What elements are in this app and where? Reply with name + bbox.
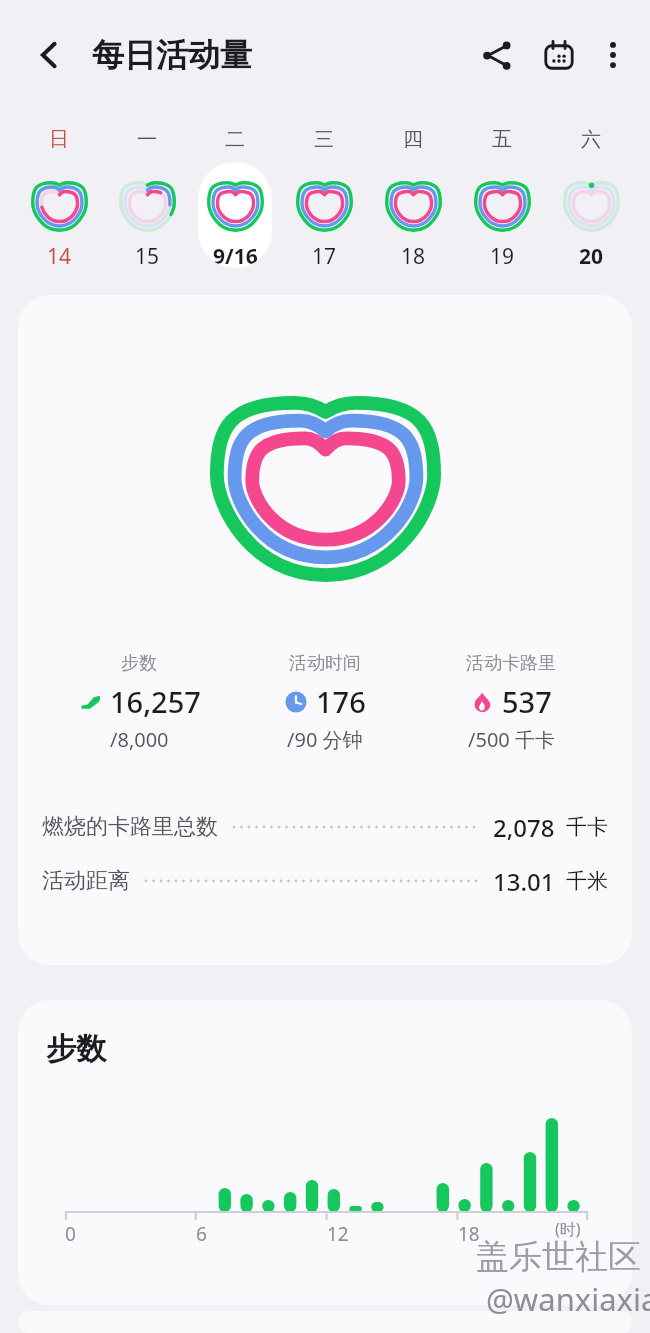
staticText: 15	[135, 242, 160, 268]
button[interactable]: 活动时间	[232, 652, 418, 753]
staticText: 18	[458, 1221, 480, 1247]
button[interactable]: 六	[546, 127, 635, 268]
staticText: 一	[137, 127, 157, 152]
button[interactable]: Share	[470, 28, 524, 82]
staticText: /8,000	[110, 726, 169, 753]
staticText: 活动时间	[289, 652, 361, 675]
button[interactable]: Calendar	[532, 28, 586, 82]
button[interactable]: 燃烧的卡路里总数	[42, 804, 608, 850]
staticText: 17	[312, 242, 337, 268]
staticText: 2,078	[493, 811, 555, 844]
button[interactable]: Back	[26, 32, 72, 78]
staticText: 14	[47, 242, 72, 268]
staticText: 三	[314, 127, 334, 152]
staticText: 9/16	[213, 242, 258, 268]
button[interactable]: 二	[191, 127, 279, 268]
staticText: 19	[490, 242, 515, 268]
staticText: 活动卡路里	[466, 652, 556, 675]
staticText: 537	[502, 682, 552, 721]
button[interactable]: 活动时间	[18, 1311, 632, 1333]
button[interactable]: More options	[586, 28, 640, 82]
button[interactable]: 步数	[18, 295, 632, 965]
staticText: 18	[401, 242, 426, 268]
staticText: 步数	[121, 652, 157, 675]
staticText: 活动距离	[42, 867, 130, 895]
button[interactable]: 四	[368, 127, 457, 268]
staticText: 日	[49, 127, 69, 152]
staticText: 四	[403, 127, 423, 152]
staticText: 20	[579, 242, 604, 268]
staticText: 0	[65, 1221, 76, 1247]
staticText: 六	[581, 127, 601, 152]
staticText: 每日活动量	[92, 35, 252, 75]
button[interactable]: 五	[457, 127, 546, 268]
staticText: (时)	[555, 1218, 581, 1240]
button[interactable]: 活动距离	[42, 858, 608, 904]
staticText: 176	[316, 682, 366, 721]
button[interactable]: 三	[279, 127, 368, 268]
staticText: 16,257	[110, 682, 201, 721]
button[interactable]: 活动卡路里	[418, 652, 604, 753]
staticText: /90 分钟	[287, 726, 363, 753]
staticText: 步数	[46, 1030, 106, 1068]
button[interactable]: 步数	[46, 652, 232, 753]
staticText: 盖乐世社区	[476, 1236, 641, 1278]
button[interactable]: 步数	[18, 1000, 632, 1305]
button[interactable]: 日	[15, 127, 103, 268]
staticText: /500 千卡	[468, 726, 555, 753]
button[interactable]: 一	[103, 127, 191, 268]
staticText: 千卡	[566, 814, 608, 840]
staticText: 二	[225, 127, 245, 152]
staticText: 12	[327, 1221, 349, 1247]
staticText: 千米	[566, 868, 608, 894]
staticText: @wanxiaxia	[486, 1278, 650, 1320]
staticText: 13.01	[493, 865, 555, 898]
staticText: 6	[196, 1221, 207, 1247]
staticText: 五	[492, 127, 512, 152]
staticText: 燃烧的卡路里总数	[42, 813, 218, 841]
